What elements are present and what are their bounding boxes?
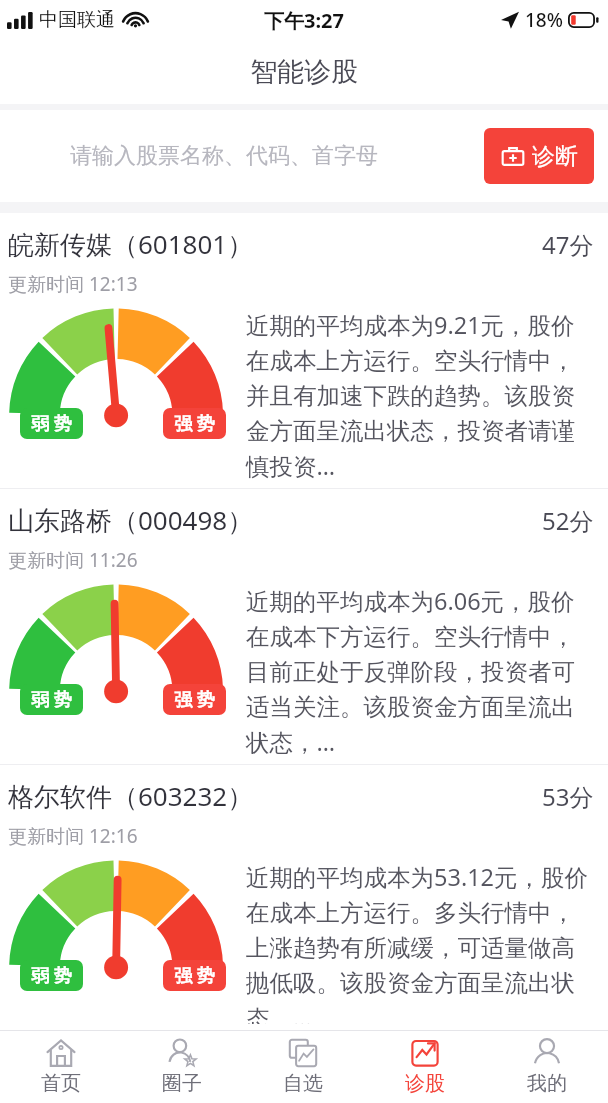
- button[interactable]: 格尔软件（603232）: [0, 765, 608, 1030]
- staticText: 52分: [542, 504, 594, 537]
- staticText: 强 势: [174, 963, 215, 988]
- staticText: 弱 势: [31, 963, 72, 988]
- staticText: 智能诊股: [250, 55, 358, 89]
- staticText: 18%: [525, 7, 563, 33]
- staticText: 近期的平均成本为53.12元，股价在成本上方运行。多头行情中，上涨趋势有所减缓，…: [246, 861, 594, 1024]
- other: 诊股: [410, 1038, 440, 1068]
- other: 圈子: [167, 1038, 197, 1068]
- staticText: 自选: [283, 1071, 323, 1096]
- staticText: 更新时间 12:16: [8, 823, 138, 849]
- staticText: 诊股: [405, 1071, 445, 1096]
- staticText: 格尔软件（603232）: [8, 778, 254, 814]
- staticText: 弱 势: [31, 687, 72, 712]
- button[interactable]: 诊断: [484, 128, 594, 184]
- staticText: 诊断: [532, 142, 578, 171]
- button[interactable]: 自选: [242, 1031, 364, 1103]
- button[interactable]: 我的: [486, 1031, 608, 1103]
- button[interactable]: 请输入股票名称、代码、首字母: [14, 128, 434, 184]
- staticText: 圈子: [162, 1071, 202, 1096]
- button[interactable]: 首页: [0, 1031, 121, 1103]
- staticText: 山东路桥（000498）: [8, 502, 254, 538]
- staticText: 弱 势: [31, 411, 72, 436]
- staticText: 更新时间 12:13: [8, 271, 138, 297]
- staticText: 强 势: [174, 411, 215, 436]
- button[interactable]: 皖新传媒（601801）: [0, 213, 608, 488]
- staticText: 53分: [542, 780, 594, 813]
- staticText: 首页: [41, 1071, 81, 1096]
- button[interactable]: 诊股: [364, 1031, 486, 1103]
- other: 我的: [532, 1038, 562, 1068]
- staticText: 47分: [542, 228, 594, 261]
- other: 首页: [46, 1038, 76, 1068]
- staticText: 强 势: [174, 687, 215, 712]
- button[interactable]: 圈子: [121, 1031, 242, 1103]
- other: 自选: [288, 1038, 318, 1068]
- staticText: 请输入股票名称、代码、首字母: [70, 142, 378, 170]
- staticText: 中国联通: [39, 8, 115, 32]
- button[interactable]: 山东路桥（000498）: [0, 489, 608, 764]
- staticText: 下午3:27: [264, 7, 344, 34]
- staticText: 更新时间 11:26: [8, 547, 138, 573]
- staticText: 皖新传媒（601801）: [8, 226, 254, 262]
- staticText: 近期的平均成本为6.06元，股价在成本下方运行。空头行情中，目前正处于反弹阶段，…: [246, 585, 594, 758]
- staticText: 近期的平均成本为9.21元，股价在成本上方运行。空头行情中，并且有加速下跌的趋势…: [246, 309, 594, 482]
- staticText: 我的: [527, 1071, 567, 1096]
